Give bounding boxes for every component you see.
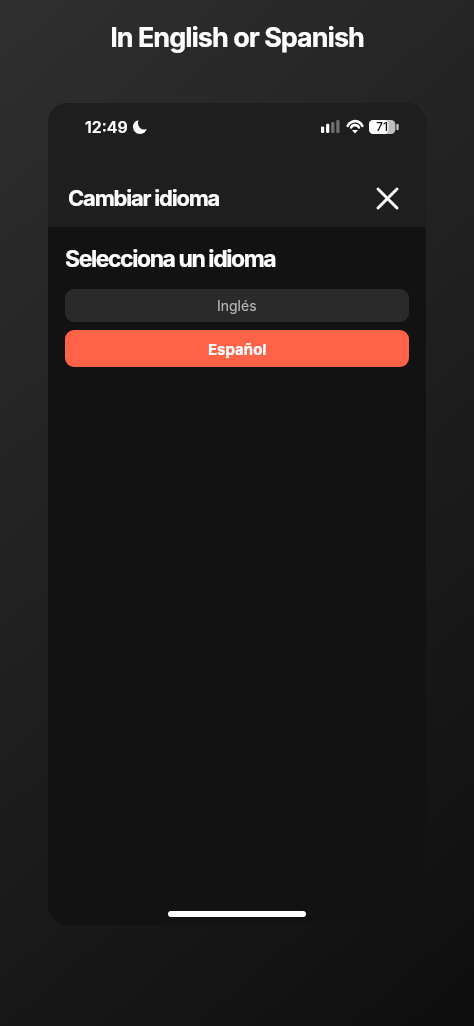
button[interactable]: Inglés — [65, 289, 409, 322]
staticText: 12:49 — [85, 117, 128, 136]
staticText: Cambiar idioma — [68, 185, 220, 212]
staticText: Inglés — [217, 297, 257, 314]
staticText: In English or Spanish — [0, 21, 474, 54]
staticText: Selecciona un idioma — [65, 245, 276, 273]
button[interactable]: Español — [65, 330, 409, 367]
button[interactable]: Close — [370, 181, 404, 215]
staticText: Español — [208, 340, 267, 358]
staticText: 71 — [376, 119, 388, 134]
